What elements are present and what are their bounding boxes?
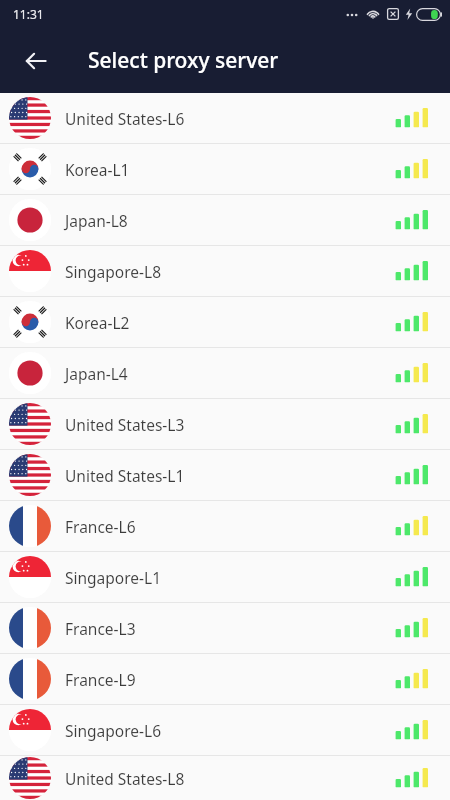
staticText: Select proxy server [88, 46, 279, 75]
staticText: Korea-L2 [65, 312, 392, 333]
button[interactable]: Korea-L2 [0, 297, 450, 348]
staticText: France-L6 [65, 516, 392, 537]
staticText: Singapore-L1 [65, 567, 392, 588]
button[interactable]: Japan-L8 [0, 195, 450, 246]
button[interactable]: United States-L3 [0, 399, 450, 450]
button[interactable]: United States-L6 [0, 93, 450, 144]
button[interactable]: Back [12, 37, 60, 85]
staticText: Japan-L4 [65, 363, 392, 384]
button[interactable]: Singapore-L8 [0, 246, 450, 297]
staticText: Singapore-L8 [65, 261, 392, 282]
button[interactable]: United States-L1 [0, 450, 450, 501]
button[interactable]: Japan-L4 [0, 348, 450, 399]
staticText: France-L9 [65, 669, 392, 690]
staticText: United States-L6 [65, 108, 392, 129]
button[interactable]: Singapore-L6 [0, 705, 450, 756]
staticText: United States-L8 [65, 768, 392, 789]
staticText: United States-L3 [65, 414, 392, 435]
staticText: France-L3 [65, 618, 392, 639]
button[interactable]: Singapore-L1 [0, 552, 450, 603]
button[interactable]: France-L6 [0, 501, 450, 552]
staticText: 11:31 [13, 6, 44, 22]
staticText: United States-L1 [65, 465, 392, 486]
button[interactable]: France-L9 [0, 654, 450, 705]
staticText: Japan-L8 [65, 210, 392, 231]
button[interactable]: France-L3 [0, 603, 450, 654]
staticText: Korea-L1 [65, 159, 392, 180]
staticText: Singapore-L6 [65, 720, 392, 741]
button[interactable]: Korea-L1 [0, 144, 450, 195]
button[interactable]: United States-L8 [0, 756, 450, 800]
